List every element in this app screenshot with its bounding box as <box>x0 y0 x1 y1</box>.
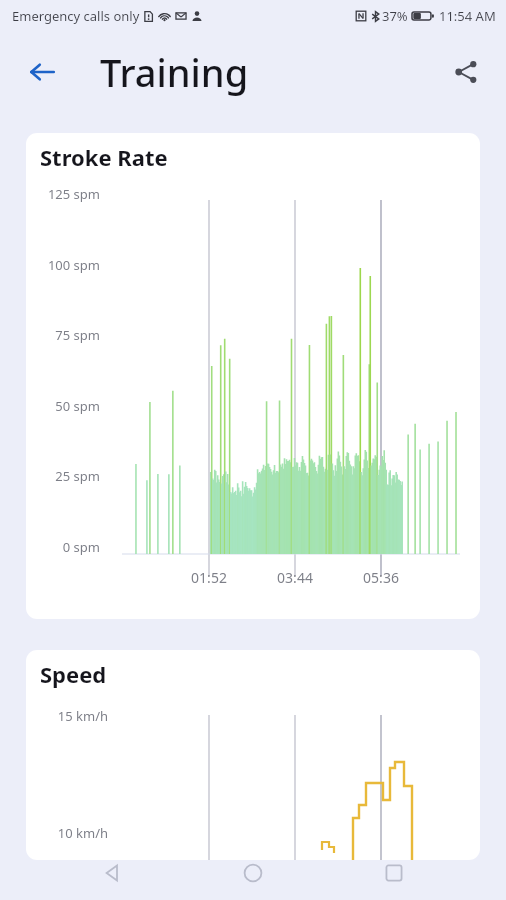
staticText: 100 spm <box>26 256 100 274</box>
staticText: 05:36 <box>355 568 407 587</box>
staticText: 50 spm <box>26 397 100 415</box>
button[interactable]: Speed <box>26 650 480 860</box>
staticText: Speed <box>40 659 107 689</box>
staticText: 11:54 AM <box>439 7 496 25</box>
button[interactable]: Stroke Rate <box>26 133 480 619</box>
staticText: 15 km/h <box>26 707 108 725</box>
staticText: Emergency calls only <box>12 7 140 25</box>
staticText: 0 spm <box>26 538 100 556</box>
staticText: Stroke Rate <box>40 142 168 172</box>
button[interactable]: Home <box>225 846 281 900</box>
staticText: 125 spm <box>26 185 100 203</box>
button[interactable]: Back <box>18 48 66 96</box>
staticText: 25 spm <box>26 467 100 485</box>
button[interactable]: Share <box>444 50 488 94</box>
staticText: Training <box>100 46 249 98</box>
staticText: 03:44 <box>269 568 321 587</box>
staticText: 75 spm <box>26 326 100 344</box>
staticText: 37% <box>382 7 408 25</box>
button[interactable]: Back <box>85 846 141 900</box>
staticText: 10 km/h <box>26 824 108 842</box>
button[interactable]: Recents <box>366 846 422 900</box>
staticText: 01:52 <box>183 568 235 587</box>
